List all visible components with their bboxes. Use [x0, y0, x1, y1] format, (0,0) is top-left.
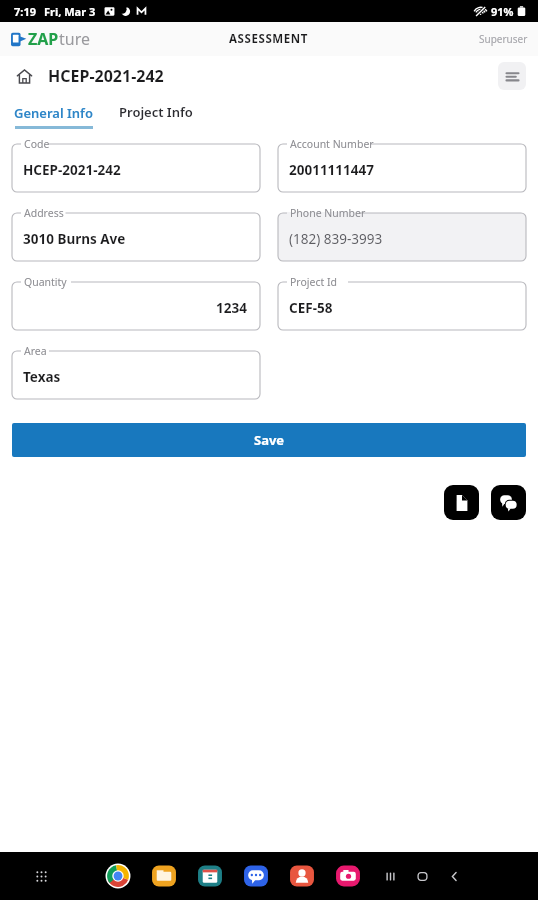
staticText: Address: [24, 206, 64, 220]
button[interactable]: Address: [12, 206, 260, 261]
button[interactable]: Calendar: [195, 861, 225, 891]
button[interactable]: General Info: [12, 100, 95, 129]
staticText: Area: [24, 344, 47, 358]
staticText: Project Info: [119, 103, 193, 121]
staticText: Code: [24, 137, 50, 151]
staticText: ASSESSMENT: [229, 31, 309, 47]
staticText: ZAP: [28, 28, 59, 50]
staticText: General Info: [14, 104, 93, 122]
staticText: ture: [59, 28, 90, 50]
staticText: 91%: [491, 4, 514, 19]
button[interactable]: ZAP: [10, 28, 90, 50]
button[interactable]: Chrome: [103, 861, 133, 891]
staticText: 7:19: [14, 4, 36, 19]
staticText: Account Number: [290, 137, 374, 151]
button[interactable]: Superuser: [479, 32, 528, 46]
button[interactable]: Back: [441, 863, 467, 889]
button[interactable]: Quantity: [12, 275, 260, 330]
button[interactable]: All apps: [28, 863, 54, 889]
staticText: Phone Number: [290, 206, 366, 220]
button[interactable]: Phone Number: [278, 206, 526, 261]
button[interactable]: Home: [409, 863, 435, 889]
button[interactable]: Menu: [498, 62, 526, 90]
staticText: CEF-58: [289, 299, 333, 317]
staticText: Project Id: [290, 275, 338, 289]
button[interactable]: Messages: [241, 861, 271, 891]
staticText: Fri, Mar 3: [44, 4, 96, 19]
button[interactable]: Code: [12, 137, 260, 192]
staticText: HCEP-2021-242: [48, 65, 164, 87]
staticText: Quantity: [24, 275, 67, 289]
staticText: (182) 839-3993: [289, 230, 383, 248]
button[interactable]: Camera: [333, 861, 363, 891]
button[interactable]: Save: [12, 423, 526, 457]
staticText: 1234: [216, 299, 247, 317]
button[interactable]: Project Info: [117, 103, 195, 129]
staticText: HCEP-2021-242: [23, 161, 121, 179]
button[interactable]: Account Number: [278, 137, 526, 192]
button[interactable]: Contacts: [287, 861, 317, 891]
button[interactable]: Recents: [377, 863, 403, 889]
button[interactable]: Comments: [491, 485, 526, 520]
staticText: 3010 Burns Ave: [23, 230, 126, 248]
button[interactable]: Home: [10, 62, 38, 90]
staticText: 20011111447: [289, 161, 374, 179]
button[interactable]: Project Id: [278, 275, 526, 330]
button[interactable]: Area: [12, 344, 260, 399]
button[interactable]: Documents: [444, 485, 479, 520]
staticText: Save: [254, 431, 285, 449]
staticText: Texas: [23, 368, 61, 386]
button[interactable]: Files: [149, 861, 179, 891]
